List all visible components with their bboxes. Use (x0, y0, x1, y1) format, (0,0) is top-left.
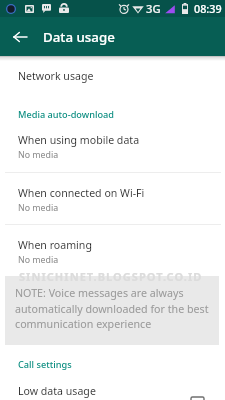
button[interactable]: When using mobile data (0, 125, 225, 169)
button[interactable]: When connected on Wi-Fi (0, 178, 225, 222)
staticText: Call settings (18, 358, 72, 371)
button[interactable]: Back (0, 17, 40, 56)
button[interactable]: When roaming (0, 230, 225, 274)
staticText: NOTE: Voice messages are always automati… (15, 286, 211, 331)
staticText: When using mobile data (18, 133, 140, 147)
staticText: When roaming (18, 238, 92, 252)
button[interactable]: Network usage (0, 65, 225, 87)
staticText: Media auto-download (18, 108, 114, 121)
staticText: No media (18, 202, 59, 214)
button[interactable]: Low data usage (0, 379, 225, 400)
staticText: When connected on Wi-Fi (18, 186, 145, 200)
staticText: No media (18, 254, 59, 266)
staticText: Network usage (18, 69, 94, 83)
staticText: No media (18, 149, 59, 161)
staticText: SINICHINET.BLOGSPOT.CO.ID (19, 269, 203, 284)
staticText: Data usage (43, 28, 115, 46)
staticText: 08:39 (194, 1, 222, 16)
staticText: Low data usage (18, 384, 96, 398)
staticText: 3G (146, 1, 161, 16)
